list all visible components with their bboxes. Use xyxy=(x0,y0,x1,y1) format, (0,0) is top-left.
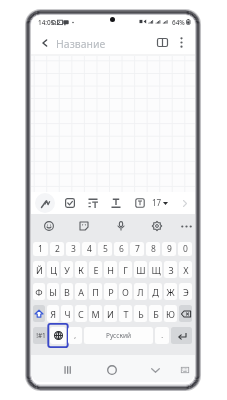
button[interactable]: Ь xyxy=(134,305,147,322)
button[interactable]: Checklist xyxy=(60,193,80,213)
staticText: Т xyxy=(123,308,129,320)
button[interactable]: 4 xyxy=(82,242,96,256)
staticText: А xyxy=(78,286,84,298)
button[interactable]: 8 xyxy=(146,242,160,256)
staticText: К xyxy=(78,264,84,276)
staticText: Л xyxy=(137,286,144,298)
staticText: С xyxy=(78,308,84,320)
staticText: Б xyxy=(153,308,159,320)
button[interactable]: 3 xyxy=(66,242,80,256)
button[interactable]: Я xyxy=(47,305,59,322)
button[interactable]: Text box xyxy=(130,193,150,213)
staticText: Ю xyxy=(166,308,175,320)
button[interactable]: Т xyxy=(119,305,132,322)
button[interactable]: Recent apps xyxy=(58,361,76,379)
button[interactable]: 6 xyxy=(114,242,128,256)
button[interactable]: К xyxy=(75,261,87,278)
staticText: Е xyxy=(93,264,99,276)
button[interactable]: Щ xyxy=(149,261,162,278)
staticText: Г xyxy=(123,264,128,276)
staticText: 4 xyxy=(87,243,92,255)
button[interactable]: 17 xyxy=(152,197,168,208)
staticText: Ж xyxy=(166,286,175,298)
button[interactable]: Settings xyxy=(149,218,165,234)
staticText: 2 xyxy=(55,243,60,255)
button[interactable]: С xyxy=(75,305,87,322)
button[interactable]: Л xyxy=(134,283,147,300)
button[interactable]: Ю xyxy=(164,305,177,322)
staticText: 64% xyxy=(172,18,185,27)
button[interactable]: Backspace xyxy=(179,305,192,322)
button[interactable]: Voice input xyxy=(113,218,129,234)
button[interactable]: Shift xyxy=(33,305,45,322)
staticText: Й xyxy=(36,264,43,276)
button[interactable]: Ж xyxy=(164,283,177,300)
button[interactable]: Reading mode xyxy=(153,33,172,52)
button[interactable]: Ч xyxy=(61,305,73,322)
staticText: В xyxy=(64,286,70,298)
staticText: 17 xyxy=(152,197,162,208)
button[interactable]: More xyxy=(178,218,194,234)
button[interactable]: Enter xyxy=(171,327,192,344)
button[interactable]: More options xyxy=(172,33,191,52)
button[interactable]: 5 xyxy=(98,242,112,256)
button[interactable]: Р xyxy=(104,283,117,300)
button[interactable]: 0 xyxy=(178,242,192,256)
button[interactable]: О xyxy=(119,283,132,300)
button[interactable]: Ц xyxy=(47,261,59,278)
button[interactable]: Б xyxy=(149,305,162,322)
button[interactable]: 7 xyxy=(130,242,144,256)
button[interactable]: . xyxy=(155,327,169,344)
button[interactable]: Русский xyxy=(84,327,153,344)
button[interactable]: Paragraph xyxy=(83,193,103,213)
button[interactable]: Д xyxy=(149,283,162,300)
button[interactable]: Choose keyboard xyxy=(177,362,192,377)
button[interactable]: Back xyxy=(35,33,54,52)
button[interactable]: Underline xyxy=(106,193,126,213)
button[interactable]: А xyxy=(75,283,87,300)
button[interactable]: У xyxy=(61,261,73,278)
button[interactable]: М xyxy=(89,305,102,322)
button[interactable]: 9 xyxy=(162,242,176,256)
button[interactable]: Emoji xyxy=(41,218,57,234)
button[interactable]: Home xyxy=(103,361,121,379)
button[interactable]: В xyxy=(61,283,73,300)
button[interactable]: Н xyxy=(104,261,117,278)
staticText: Ч xyxy=(64,308,71,320)
staticText: Ц xyxy=(50,264,57,276)
button[interactable]: Stickers xyxy=(76,218,92,234)
button[interactable]: Change language xyxy=(50,327,66,344)
button[interactable]: П xyxy=(89,283,102,300)
staticText: Ь xyxy=(138,308,144,320)
button[interactable]: И xyxy=(104,305,117,322)
staticText: Щ xyxy=(151,264,161,276)
staticText: Р xyxy=(108,286,114,298)
button[interactable]: Х xyxy=(179,261,192,278)
staticText: Ф xyxy=(35,286,43,298)
staticText: 9 xyxy=(167,243,172,255)
button[interactable]: Hide keyboard xyxy=(146,361,164,379)
staticText: Н xyxy=(107,264,114,276)
button[interactable]: Ш xyxy=(134,261,147,278)
staticText: П xyxy=(92,286,99,298)
button[interactable]: Ы xyxy=(47,283,59,300)
button[interactable]: Е xyxy=(89,261,102,278)
staticText: М xyxy=(91,308,100,320)
button[interactable]: З xyxy=(164,261,177,278)
staticText: Название xyxy=(56,37,106,51)
button[interactable]: Э xyxy=(179,283,192,300)
staticText: 6 xyxy=(119,243,124,255)
staticText: О xyxy=(122,286,129,298)
button[interactable]: Г xyxy=(119,261,132,278)
button[interactable]: , xyxy=(68,327,82,344)
staticText: И xyxy=(107,308,114,320)
staticText: Х xyxy=(183,264,189,276)
button[interactable]: !#1 xyxy=(33,327,48,344)
button[interactable]: 1 xyxy=(33,242,48,256)
staticText: 7 xyxy=(135,243,140,255)
button[interactable]: 2 xyxy=(50,242,64,256)
staticText: 0 xyxy=(183,243,188,255)
button[interactable]: Ф xyxy=(33,283,45,300)
button[interactable]: Й xyxy=(33,261,45,278)
button[interactable]: Handwriting xyxy=(35,193,55,213)
